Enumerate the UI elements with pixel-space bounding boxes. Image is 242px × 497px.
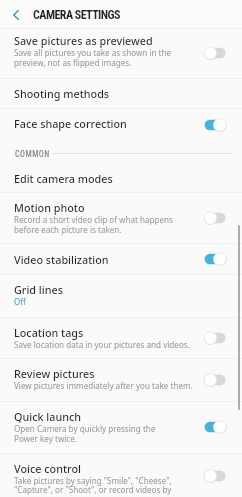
staticText: before each picture is taken.	[14, 224, 122, 235]
button[interactable]	[0, 358, 242, 401]
button[interactable]: On	[204, 420, 226, 434]
staticText: Edit camera modes	[14, 171, 113, 186]
staticText: Quick launch	[14, 409, 81, 424]
button[interactable]	[0, 192, 242, 243]
button[interactable]	[0, 108, 242, 141]
staticText: Location tags	[14, 325, 84, 340]
staticText: Take pictures by saying "Smile", "Cheese…	[14, 475, 172, 486]
button[interactable]: On	[204, 118, 226, 132]
button[interactable]: Off	[204, 469, 226, 483]
button[interactable]: Off	[204, 331, 226, 345]
button[interactable]: Off	[204, 211, 226, 225]
button[interactable]: Off	[204, 46, 226, 60]
staticText: Open Camera by quickly pressing the	[14, 423, 156, 434]
staticText: Face shape correction	[14, 116, 127, 131]
button[interactable]	[0, 243, 242, 274]
staticText: Power key twice.	[14, 433, 77, 444]
staticText: preview, not as flipped images.	[14, 57, 132, 68]
staticText: Voice control	[14, 461, 81, 476]
button[interactable]	[0, 317, 242, 358]
staticText: Shooting methods	[14, 86, 110, 101]
button[interactable]	[0, 78, 242, 108]
staticText: "Capture", or "Shoot", or record videos …	[14, 484, 172, 495]
button[interactable]	[0, 401, 242, 453]
staticText: Save location data in your pictures and …	[14, 339, 190, 350]
button[interactable]	[0, 274, 242, 317]
staticText: Save pictures as previewed	[14, 33, 153, 48]
staticText: COMMON	[15, 149, 50, 159]
button[interactable]	[0, 163, 242, 192]
button[interactable]: Navigate up	[1, 1, 28, 28]
staticText: Review pictures	[14, 366, 95, 381]
staticText: Save all pictures you take as shown in t…	[14, 47, 172, 58]
button[interactable]: Off	[204, 373, 226, 387]
staticText: Off	[14, 296, 26, 307]
staticText: Video stabilization	[14, 252, 109, 267]
staticText: Grid lines	[14, 282, 63, 297]
staticText: Record a short video clip of what happen…	[14, 214, 173, 225]
staticText: CAMERA SETTINGS	[33, 8, 120, 22]
staticText: View pictures immediately after you take…	[14, 380, 193, 391]
button[interactable]	[0, 453, 242, 497]
staticText: Motion photo	[14, 200, 85, 215]
button[interactable]: On	[204, 252, 226, 266]
button[interactable]	[0, 28, 242, 78]
